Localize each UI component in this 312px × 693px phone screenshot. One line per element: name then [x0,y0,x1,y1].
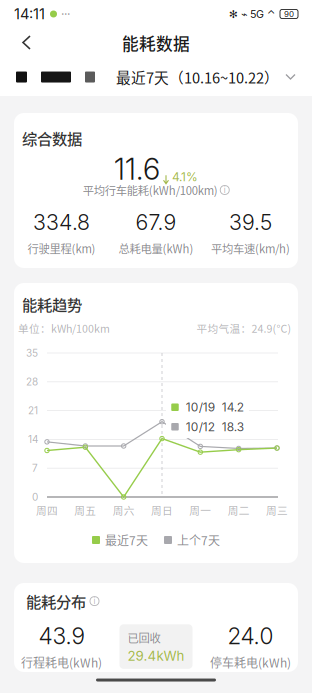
staticText: 14.2 [222,400,244,414]
staticText: 平均行车能耗(kWh/100km) [83,182,218,198]
staticText: i [93,596,95,606]
staticText: 能耗分布 [26,590,86,612]
staticText: 周一 [189,502,211,518]
staticText: 29.4kWh [127,648,184,664]
staticText: 14:11 [14,5,45,23]
staticText: 28 [26,376,38,388]
staticText: 周日 [151,502,173,518]
staticText: 67.9 [135,209,176,235]
staticText: 14 [28,433,38,445]
staticText: 已回收 [127,629,160,646]
staticText: 平均车速(km/h) [211,240,290,257]
staticText: 24.0 [227,622,273,650]
staticText: 周二 [228,502,250,518]
staticText: 单位：kWh/100km [18,320,110,336]
staticText: 10/19 [186,400,215,414]
staticText: ··· [61,7,70,21]
staticText: 周六 [113,502,135,518]
staticText: 21 [28,405,38,417]
staticText: 39.5 [229,209,272,235]
staticText: ✻ ⌁ 5G ⌃ [229,7,275,20]
button[interactable]: Back [10,26,44,60]
staticText: 4.1% [172,170,198,184]
staticText: 停车耗电(kWh) [210,654,291,671]
staticText: 最近7天（10.16~10.22） [116,66,279,88]
staticText: 行程耗电(kWh) [21,654,102,671]
staticText: 上个7天 [177,531,220,549]
staticText: 0 [32,491,38,503]
staticText: 平均气温：24.9(°C) [196,320,291,336]
staticText: 周四 [36,502,58,518]
staticText: 行驶里程(km) [27,240,95,257]
staticText: i [224,185,226,195]
staticText: 能耗趋势 [22,293,82,315]
staticText: 43.9 [38,622,84,650]
staticText: 最近7天 [105,531,148,549]
staticText: 周五 [74,502,96,518]
staticText: 18.3 [222,419,244,434]
button[interactable]: 最近7天（10.16~10.22） [116,66,296,88]
staticText: 334.8 [33,209,90,235]
staticText: 10/12 [186,419,215,434]
staticText: 能耗数据 [122,31,190,55]
staticText: 周三 [266,502,288,518]
staticText: 7 [32,462,38,474]
staticText: 11.6 [114,151,160,187]
staticText: 综合数据 [22,127,82,149]
staticText: 90 [284,9,294,19]
staticText: 35 [26,347,38,359]
staticText: 总耗电量(kWh) [118,240,193,257]
